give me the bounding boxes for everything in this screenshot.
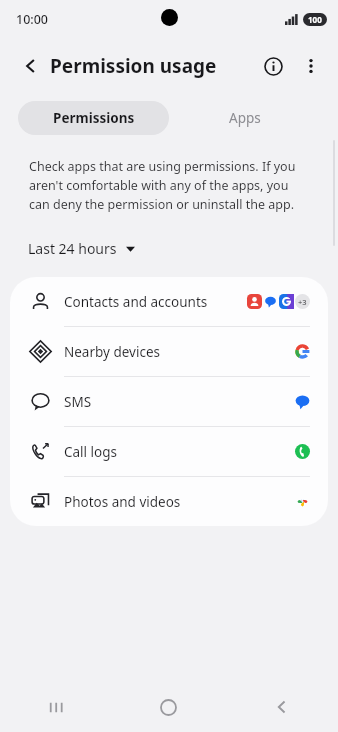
staticText: Check apps that are using permissions. I… xyxy=(29,158,312,213)
button[interactable]: Permissions xyxy=(18,101,169,135)
button[interactable]: Nearby devices xyxy=(10,327,328,376)
button[interactable]: More options xyxy=(292,47,330,85)
button[interactable]: Home xyxy=(112,682,225,732)
button[interactable]: Apps xyxy=(169,101,320,135)
staticText: Permissions xyxy=(53,109,135,127)
button[interactable]: SMS xyxy=(10,377,328,426)
button[interactable]: Last 24 hours xyxy=(22,235,141,262)
button[interactable]: Information xyxy=(254,47,292,85)
staticText: SMS xyxy=(64,393,295,411)
staticText: Last 24 hours xyxy=(28,239,117,258)
staticText: Permission usage xyxy=(50,53,217,79)
staticText: 100 xyxy=(308,14,322,25)
staticText: Nearby devices xyxy=(64,343,295,361)
button[interactable]: Recent apps xyxy=(0,682,112,732)
button[interactable]: Photos and videos xyxy=(10,477,328,526)
staticText: Contacts and accounts xyxy=(64,293,247,311)
button[interactable]: Contacts and accounts xyxy=(10,277,328,326)
button[interactable]: Back xyxy=(14,49,48,83)
button[interactable]: Call logs xyxy=(10,427,328,476)
staticText: Photos and videos xyxy=(64,493,295,511)
staticText: Apps xyxy=(229,109,261,127)
button[interactable]: Back xyxy=(225,682,338,732)
staticText: Call logs xyxy=(64,443,295,461)
staticText: 10:00 xyxy=(16,11,49,28)
staticText: +3 xyxy=(298,297,307,307)
